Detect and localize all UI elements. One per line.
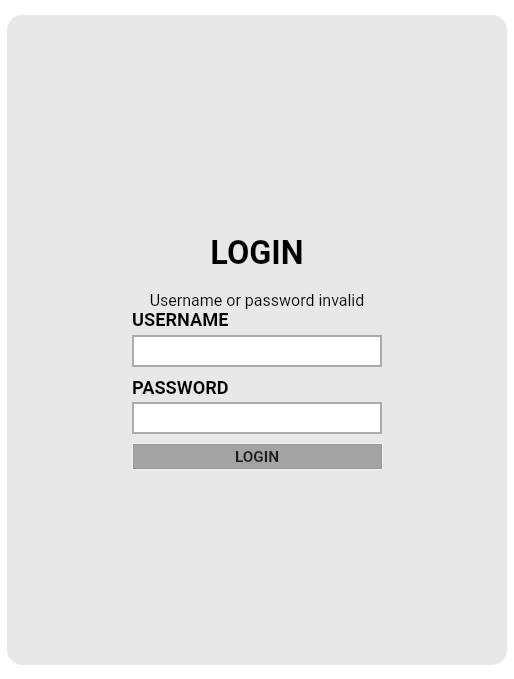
staticText: Username or password invalid <box>0 291 514 310</box>
button[interactable]: LOGIN <box>132 443 383 470</box>
staticText: LOGIN <box>235 448 280 466</box>
staticText: LOGIN <box>0 234 514 272</box>
staticText: USERNAME <box>132 309 229 330</box>
button[interactable]: Password input field <box>132 402 382 434</box>
staticText: PASSWORD <box>132 377 229 398</box>
button[interactable]: Username input field <box>132 335 382 367</box>
